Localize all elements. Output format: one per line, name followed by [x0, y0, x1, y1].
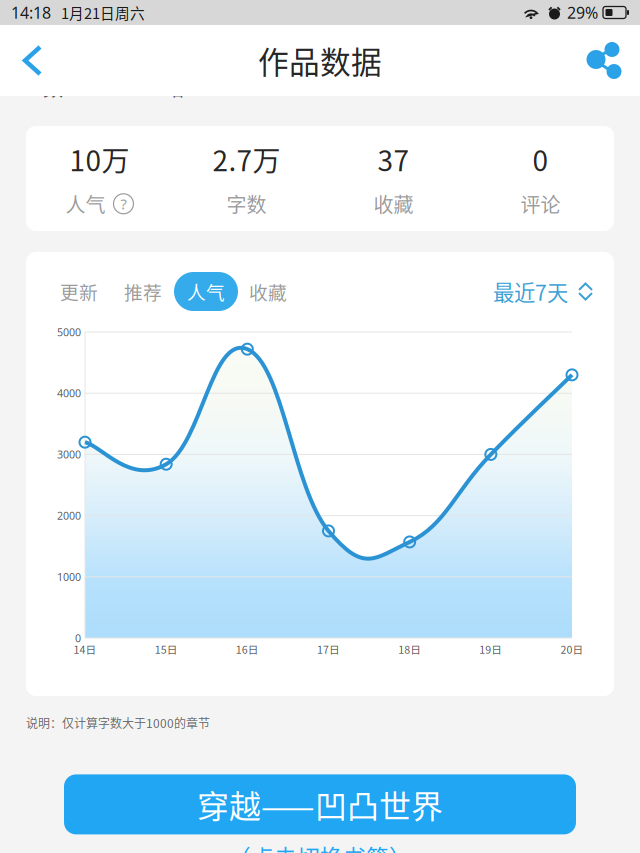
- button[interactable]: 收藏: [249, 272, 287, 311]
- staticText: 10万: [69, 139, 129, 179]
- button[interactable]: 人气: [174, 272, 238, 311]
- staticText: 字数: [226, 189, 266, 218]
- staticText: 3000: [57, 447, 81, 462]
- staticText: 17日: [317, 641, 340, 657]
- button[interactable]: 更新: [60, 272, 98, 311]
- staticText: 1000: [57, 570, 81, 584]
- staticText: 16日: [236, 641, 259, 657]
- button[interactable]: 最近7天: [493, 276, 592, 307]
- staticText: 人气: [65, 189, 105, 218]
- staticText: 最近7天: [493, 276, 568, 307]
- staticText: 19日: [479, 641, 502, 657]
- staticText: 收藏: [249, 278, 287, 305]
- staticText: 37: [377, 139, 409, 179]
- staticText: 2000: [57, 508, 81, 523]
- button[interactable]: Share: [577, 34, 629, 86]
- staticText: 29%: [567, 2, 598, 23]
- button[interactable]: Back: [11, 35, 54, 86]
- staticText: 推荐: [124, 278, 162, 305]
- staticText: 18日: [398, 641, 421, 657]
- staticText: 人气: [187, 278, 225, 305]
- staticText: 收藏: [373, 189, 413, 218]
- staticText: 说明：仅计算字数大于1000的章节: [26, 714, 210, 731]
- staticText: 4000: [57, 386, 81, 400]
- staticText: 更新: [60, 278, 98, 305]
- staticText: 5000: [57, 325, 81, 339]
- staticText: （点击切换书籍）: [228, 840, 412, 853]
- staticText: 0: [532, 139, 548, 179]
- staticText: 1月21日周六: [61, 2, 145, 23]
- button[interactable]: 推荐: [124, 272, 162, 311]
- staticText: 14:18: [11, 2, 51, 23]
- staticText: 20日: [560, 641, 583, 657]
- staticText: 2.7万: [212, 139, 280, 179]
- button[interactable]: 穿越——凹凸世界: [64, 774, 576, 834]
- staticText: 0: [75, 631, 81, 645]
- staticText: 评论: [520, 189, 560, 218]
- staticText: 总字数: [43, 44, 83, 102]
- staticText: 穿越——凹凸世界: [197, 781, 443, 827]
- staticText: 昨日新增: [165, 44, 225, 102]
- staticText: 14日: [73, 641, 96, 657]
- staticText: 15日: [155, 641, 178, 657]
- staticText: ?: [120, 194, 126, 214]
- staticText: 作品数据: [258, 38, 382, 83]
